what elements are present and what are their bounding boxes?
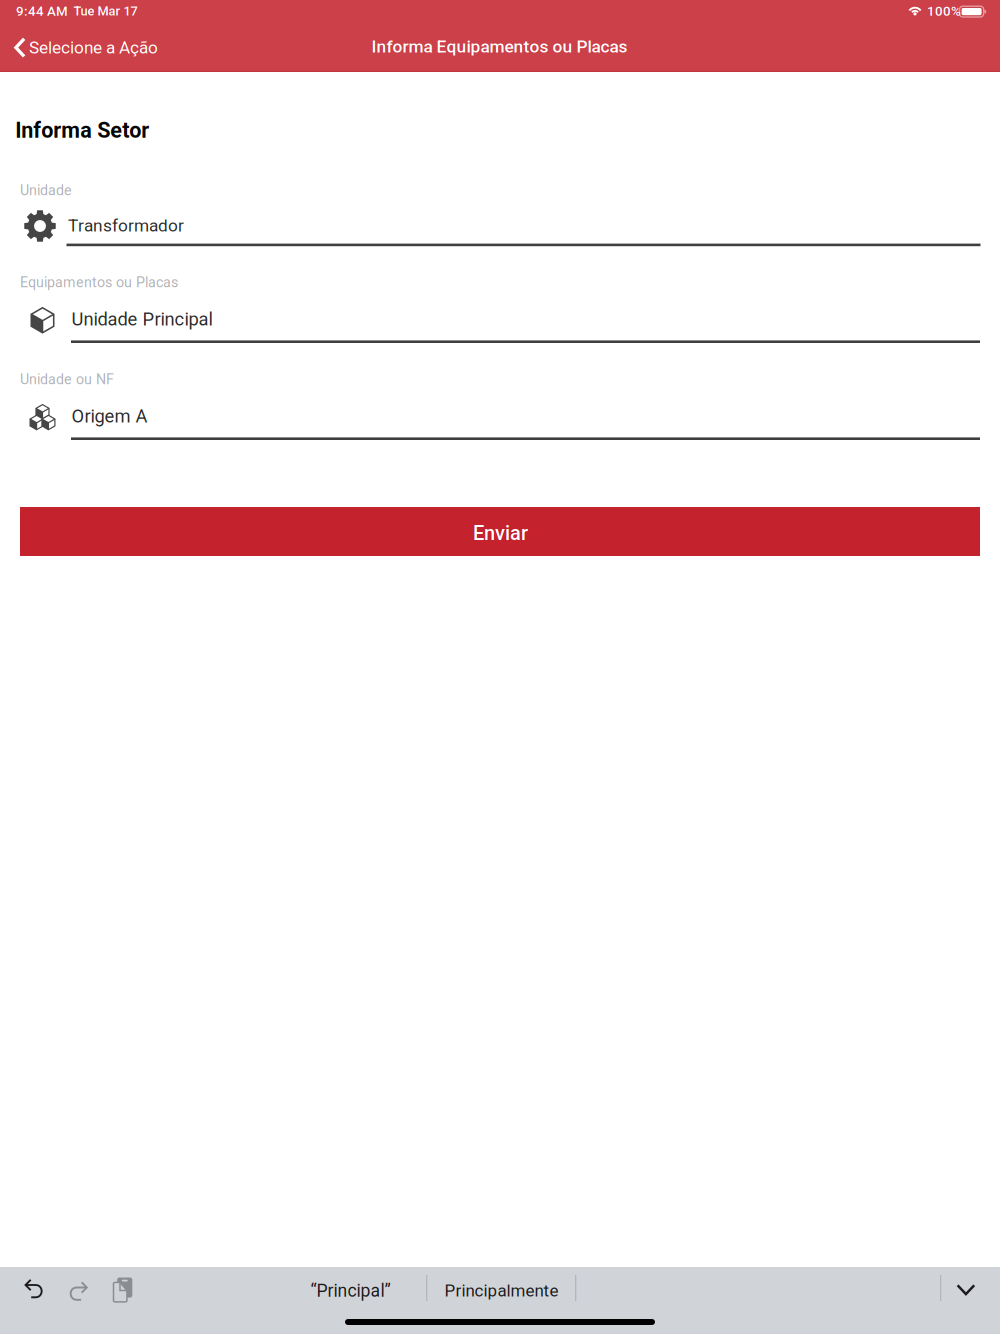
button[interactable]: Redo	[55, 1267, 97, 1311]
staticText: “Principal”	[310, 1280, 390, 1301]
staticText: Unidade Principal	[71, 308, 212, 330]
staticText: Origem A	[71, 405, 147, 427]
staticText: 9:44 AM	[16, 3, 68, 19]
button[interactable]: Principalmente	[426, 1270, 575, 1310]
button[interactable]: “Principal”	[272, 1270, 427, 1310]
staticText: Unidade ou NF	[20, 371, 114, 388]
staticText: Informa Setor	[15, 118, 149, 143]
button[interactable]: Enviar	[20, 507, 980, 556]
staticText: 100%	[927, 3, 961, 19]
staticText: Informa Equipamentos ou Placas	[371, 36, 627, 57]
staticText: Selecione a Ação	[29, 37, 158, 58]
staticText: Unidade	[20, 182, 72, 199]
staticText: Tue Mar 17	[73, 4, 137, 19]
staticText: Transformador	[68, 215, 184, 236]
staticText: Equipamentos ou Placas	[20, 274, 178, 291]
button[interactable]: Undo	[13, 1267, 55, 1311]
staticText: Principalmente	[444, 1281, 558, 1301]
button[interactable]: Paste	[101, 1267, 143, 1311]
staticText: Enviar	[473, 521, 528, 545]
button[interactable]: Hide keyboard	[944, 1267, 988, 1311]
button[interactable]: Selecione a Ação	[0, 26, 172, 70]
